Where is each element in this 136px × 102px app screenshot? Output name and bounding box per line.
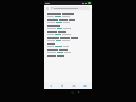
button[interactable] bbox=[44, 36, 92, 42]
button[interactable] bbox=[44, 12, 92, 18]
button[interactable] bbox=[44, 18, 92, 24]
button[interactable]: Camera bbox=[69, 82, 79, 89]
button[interactable]: Mail bbox=[80, 82, 90, 89]
button[interactable]: Share bbox=[71, 91, 74, 94]
button[interactable]: Search bbox=[50, 6, 90, 10]
button[interactable] bbox=[44, 42, 92, 48]
button[interactable]: Back bbox=[46, 82, 56, 89]
button[interactable] bbox=[44, 24, 92, 30]
button[interactable]: Signal strength bbox=[77, 91, 80, 94]
button[interactable] bbox=[44, 54, 92, 58]
button[interactable]: Bookmark bbox=[57, 82, 67, 89]
button[interactable] bbox=[44, 48, 92, 54]
button[interactable] bbox=[44, 30, 92, 36]
